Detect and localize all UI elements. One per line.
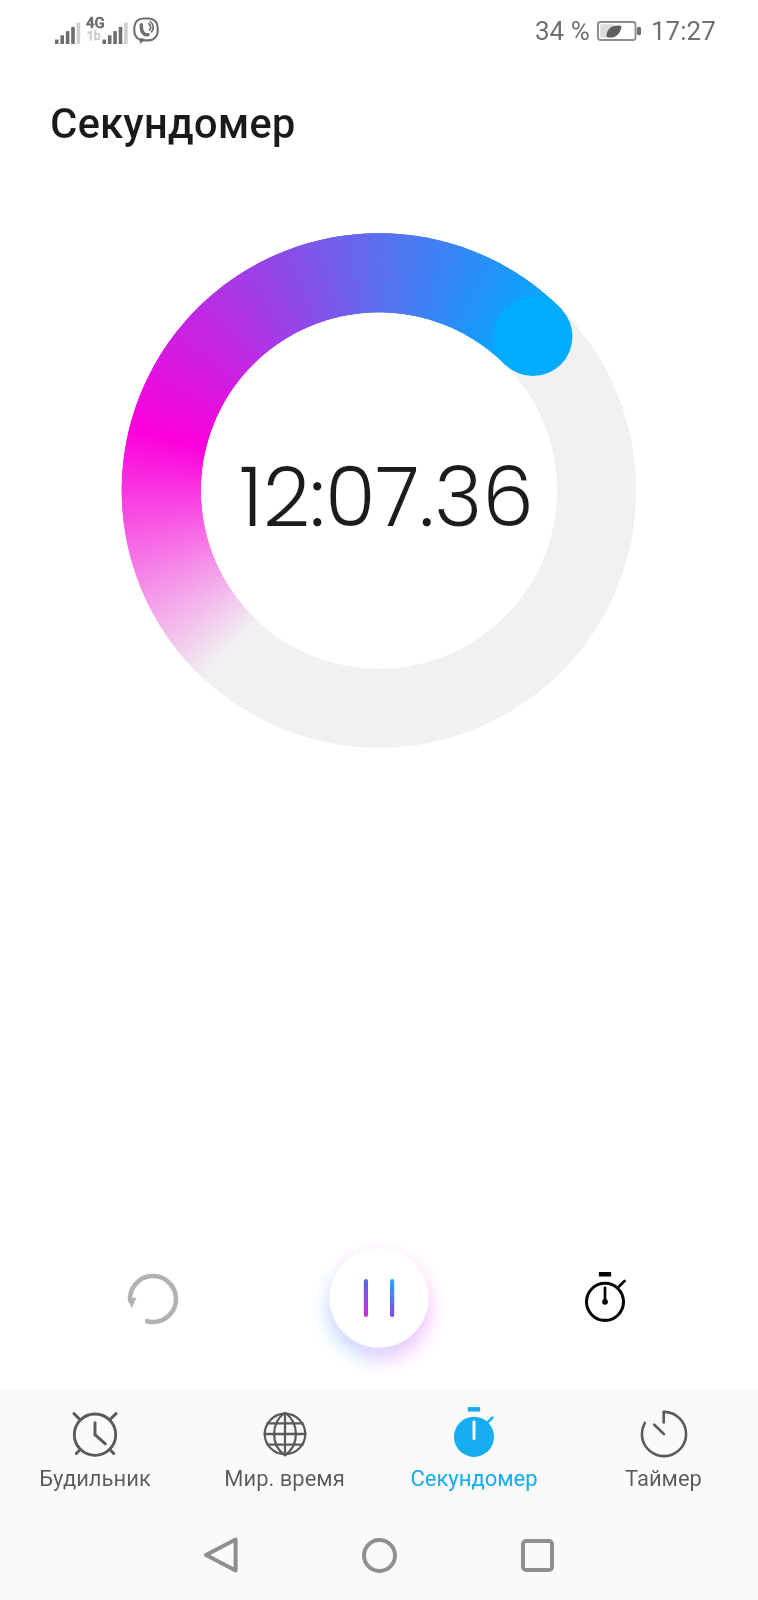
staticText: Таймер bbox=[625, 1466, 702, 1492]
staticText: 1b bbox=[87, 29, 101, 43]
button[interactable]: Мир. время bbox=[190, 1390, 379, 1511]
button[interactable]: Recents bbox=[494, 1512, 580, 1598]
button[interactable]: Секундомер bbox=[379, 1390, 568, 1511]
button[interactable]: Home bbox=[336, 1512, 422, 1598]
staticText: Будильник bbox=[39, 1466, 151, 1492]
staticText: Секундомер bbox=[410, 1466, 538, 1492]
staticText: Мир. время bbox=[224, 1466, 345, 1492]
staticText: 4G bbox=[86, 14, 105, 32]
staticText: 17:27 bbox=[651, 16, 716, 46]
staticText: 34 % bbox=[535, 16, 590, 46]
button[interactable]: Pause bbox=[330, 1249, 429, 1348]
staticText: Секундомер bbox=[50, 99, 296, 148]
staticText: 12:07.36 bbox=[239, 440, 534, 555]
button[interactable]: Lap bbox=[550, 1244, 659, 1353]
button[interactable]: Таймер bbox=[569, 1390, 758, 1511]
button[interactable]: Будильник bbox=[0, 1390, 189, 1511]
button[interactable]: Reset bbox=[98, 1244, 207, 1353]
button[interactable]: Back bbox=[178, 1512, 264, 1598]
